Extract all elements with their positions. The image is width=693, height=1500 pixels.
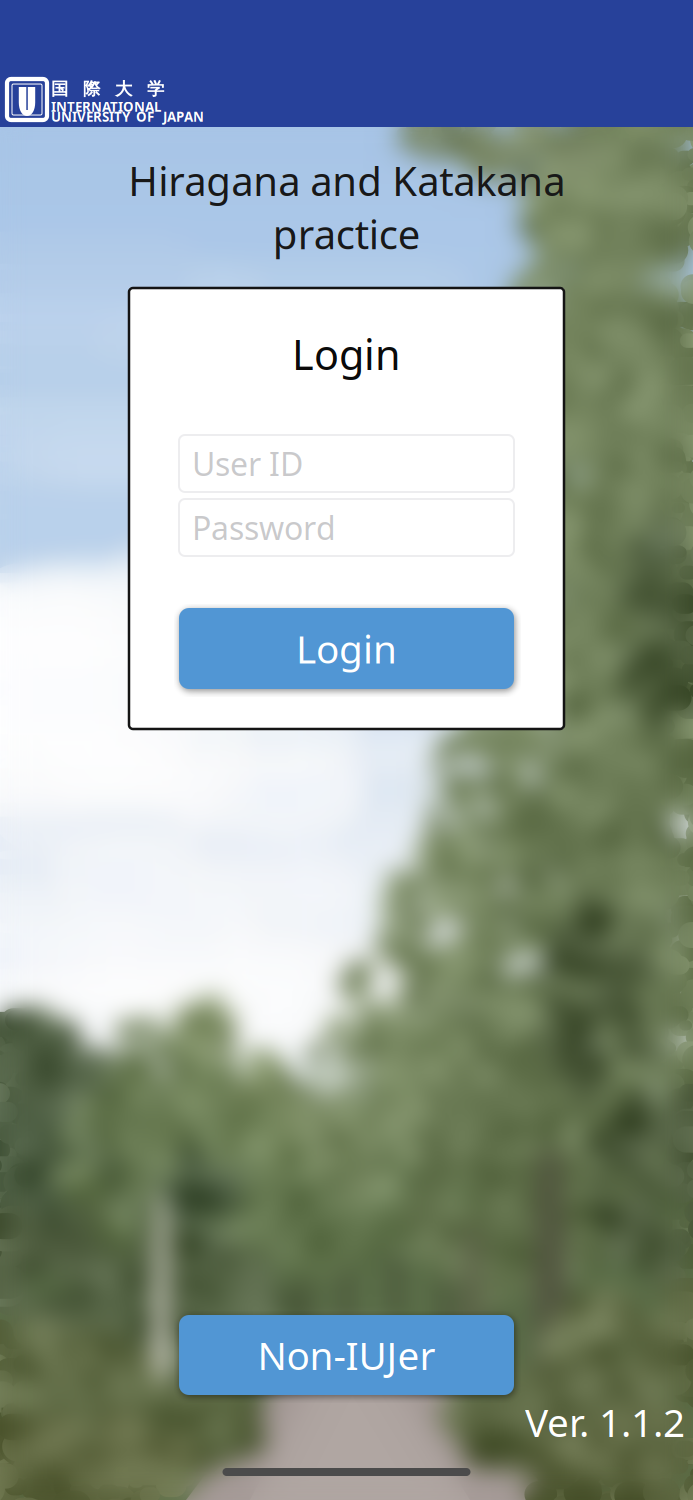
button[interactable]: Login (179, 608, 514, 689)
staticText: Login (292, 327, 401, 381)
staticText: UNIVERSITY OF JAPAN (51, 108, 204, 125)
staticText: Ver. 1.1.2 (525, 1396, 685, 1448)
staticText: INTERNATIONAL (51, 98, 161, 115)
staticText: User ID (192, 442, 303, 485)
staticText: Non-IUJer (257, 1329, 435, 1381)
staticText: Login (296, 623, 397, 674)
staticText: 国 際 大 学 (51, 78, 164, 100)
staticText: Hiragana and Katakana practice (128, 154, 565, 260)
button[interactable]: Non-IUJer (179, 1315, 514, 1395)
staticText: Password (192, 506, 336, 549)
